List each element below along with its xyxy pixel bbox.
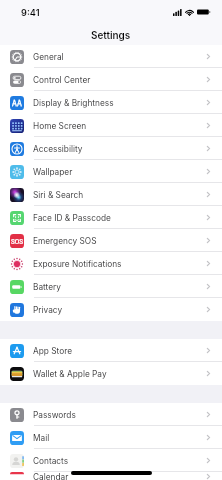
- staticText: Calendar: [33, 472, 69, 480]
- staticText: 9:41: [21, 7, 40, 18]
- button[interactable]: Passwords: [0, 403, 222, 426]
- staticText: Battery: [33, 282, 61, 292]
- button[interactable]: General: [0, 45, 222, 68]
- staticText: Exposure Notifications: [33, 259, 122, 269]
- staticText: Wallet & Apple Pay: [33, 369, 107, 379]
- button[interactable]: Mail: [0, 426, 222, 449]
- button[interactable]: SOS: [0, 229, 222, 252]
- button[interactable]: Wallet & Apple Pay: [0, 362, 222, 385]
- staticText: Passwords: [33, 410, 76, 420]
- button[interactable]: Accessibility: [0, 137, 222, 160]
- button[interactable]: Battery: [0, 275, 222, 298]
- staticText: Control Center: [33, 75, 91, 85]
- button[interactable]: App Store: [0, 339, 222, 362]
- staticText: Wallpaper: [33, 167, 73, 177]
- staticText: Display & Brightness: [33, 98, 114, 108]
- button[interactable]: Privacy: [0, 298, 222, 321]
- staticText: AA: [12, 99, 22, 107]
- staticText: SOS: [11, 238, 24, 245]
- button[interactable]: Wallpaper: [0, 160, 222, 183]
- button[interactable]: Siri & Search: [0, 183, 222, 206]
- staticText: Contacts: [33, 456, 69, 466]
- button[interactable]: Calendar: [0, 472, 222, 480]
- button[interactable]: Home Screen: [0, 114, 222, 137]
- staticText: Settings: [91, 29, 131, 41]
- staticText: Siri & Search: [33, 190, 84, 200]
- button[interactable]: Control Center: [0, 68, 222, 91]
- staticText: Privacy: [33, 305, 63, 315]
- staticText: Home Screen: [33, 121, 87, 131]
- button[interactable]: Face ID & Passcode: [0, 206, 222, 229]
- button[interactable]: Contacts: [0, 449, 222, 472]
- staticText: App Store: [33, 346, 72, 356]
- staticText: General: [33, 52, 64, 62]
- staticText: Mail: [33, 433, 50, 443]
- button[interactable]: Exposure Notifications: [0, 252, 222, 275]
- button[interactable]: AA: [0, 91, 222, 114]
- staticText: Accessibility: [33, 144, 83, 154]
- staticText: Face ID & Passcode: [33, 213, 111, 223]
- staticText: Emergency SOS: [33, 236, 97, 246]
